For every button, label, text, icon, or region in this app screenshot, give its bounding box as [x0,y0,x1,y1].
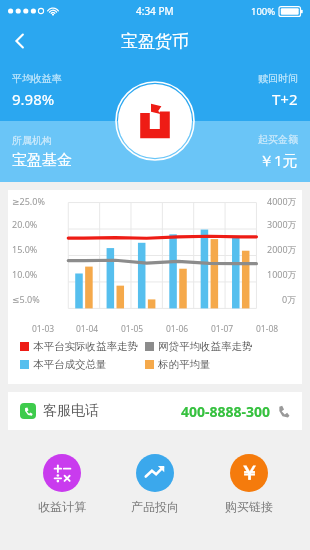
staticText: ≥25.0% [12,195,45,207]
staticText: 本平台成交总量 [33,358,107,371]
other: 收益计算 [43,454,81,492]
button[interactable]: 产品投向 [113,452,197,516]
button[interactable]: Back [0,22,40,60]
staticText: 3000万 [267,218,297,230]
button[interactable]: Fund logo [118,84,192,158]
other: 购买链接 [230,454,268,492]
staticText: 网贷平均收益率走势 [158,340,253,353]
other: Call [277,405,290,418]
staticText: 赎回时间 [258,72,298,85]
staticText: 所属机构 [12,134,52,147]
staticText: ￥1元 [259,150,298,170]
other: 产品投向 [136,454,174,492]
staticText: 购买链接 [225,499,273,514]
staticText: 0万 [282,293,297,305]
staticText: 收益计算 [38,499,86,514]
staticText: 2000万 [267,243,297,255]
button[interactable]: 购买链接 [207,452,291,516]
staticText: 400-8888-300 [181,402,271,421]
staticText: 01-06 [166,323,189,335]
staticText: 标的平均量 [158,358,211,371]
staticText: 01-07 [211,323,234,335]
staticText: 平均收益率 [12,72,62,85]
staticText: 4000万 [267,195,297,207]
staticText: 1000万 [267,268,297,280]
staticText: 客服电话 [43,402,99,420]
staticText: ≤5.0% [12,293,40,305]
staticText: 100% [251,5,276,18]
staticText: 01-08 [256,323,279,335]
staticText: 4:34 PM [136,4,174,18]
staticText: 01-05 [121,323,144,335]
staticText: 起买金额 [258,133,298,146]
staticText: 宝盈货币 [121,31,189,52]
button[interactable]: 收益计算 [20,452,104,516]
staticText: 01-04 [76,323,99,335]
staticText: ￥ [239,461,259,486]
button[interactable]: 客服电话 [8,392,302,430]
staticText: 9.98% [12,89,55,109]
staticText: 01-03 [32,323,55,335]
staticText: 15.0% [12,243,38,255]
staticText: 本平台实际收益率走势 [33,340,138,353]
staticText: 10.0% [12,268,38,280]
staticText: 20.0% [12,218,38,230]
staticText: 宝盈基金 [12,151,72,170]
staticText: 产品投向 [131,499,179,514]
staticText: T+2 [272,89,298,109]
